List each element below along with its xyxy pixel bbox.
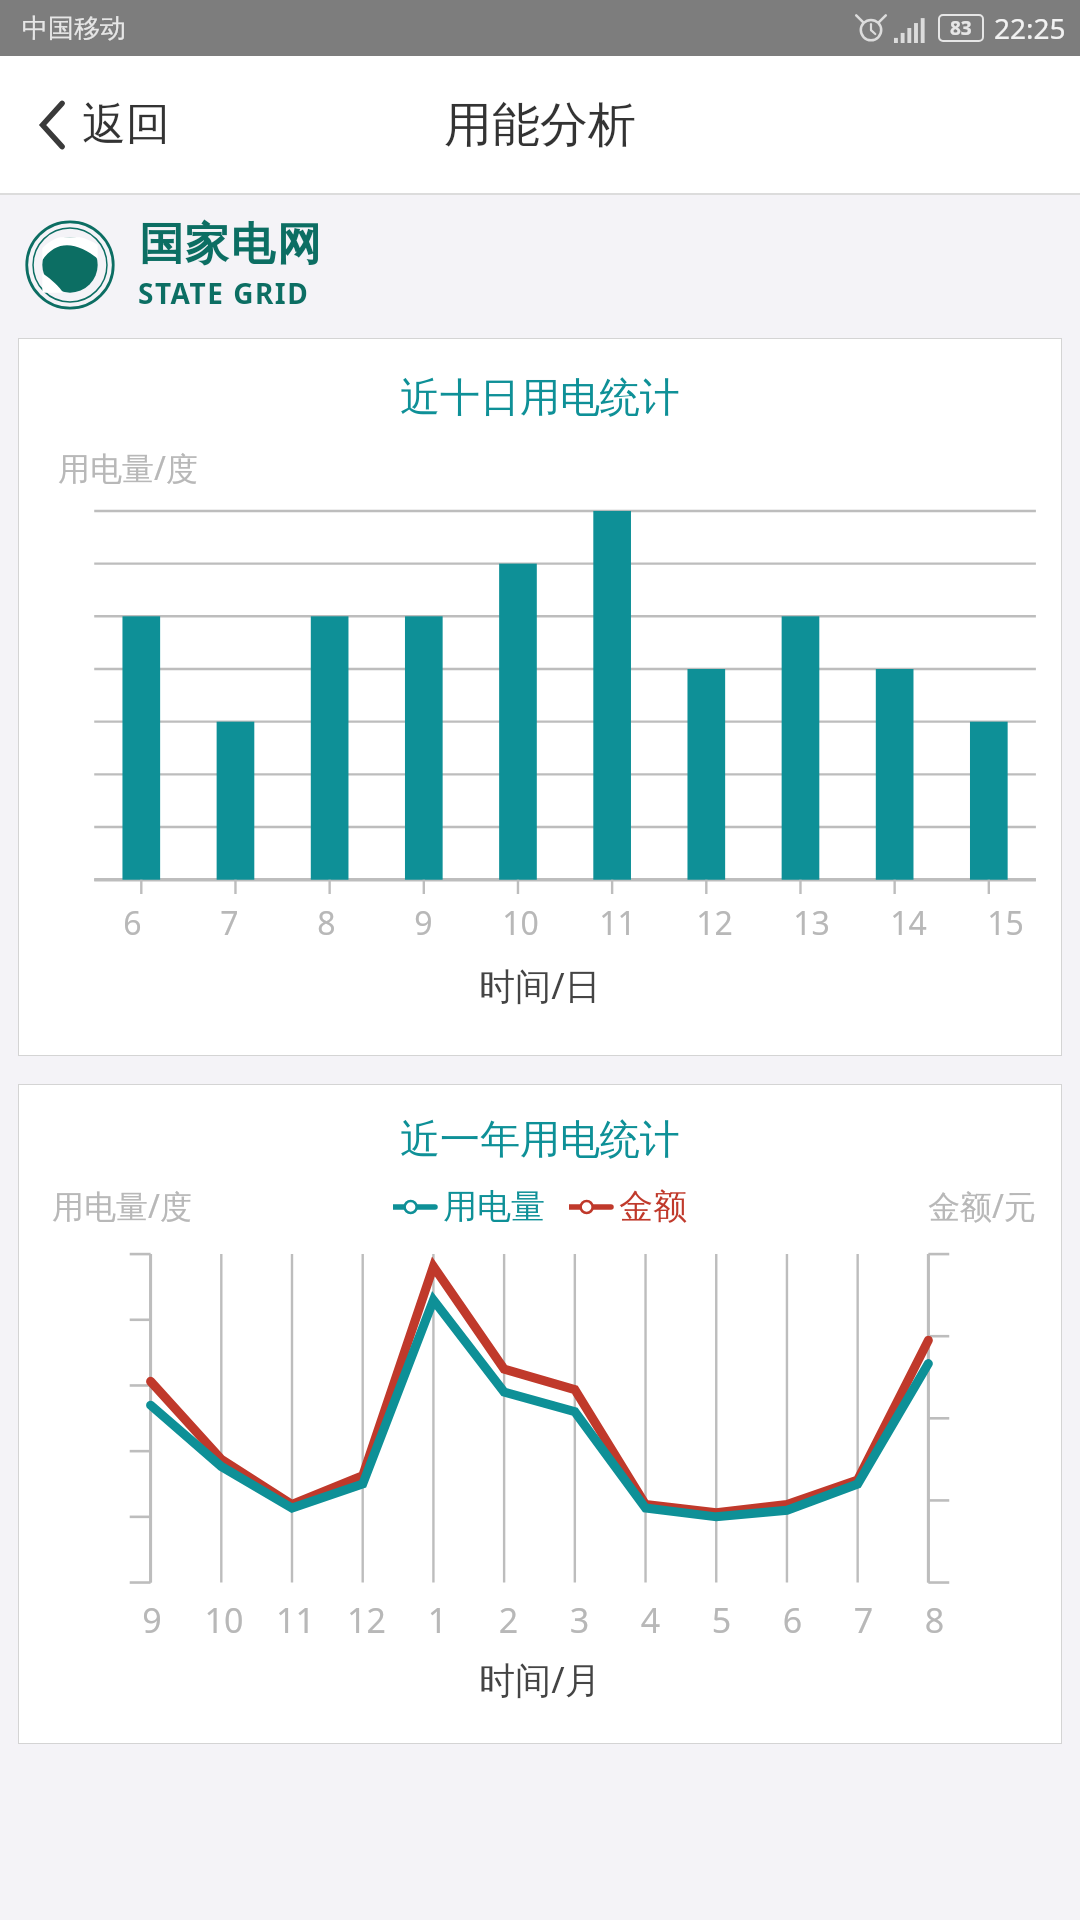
- staticText: 中国移动: [22, 12, 126, 45]
- staticText: 用能分析: [444, 95, 636, 155]
- staticText: 7: [181, 901, 278, 945]
- staticText: 近一年用电统计: [18, 1114, 1062, 1164]
- staticText: 近十日用电统计: [18, 372, 1062, 422]
- staticText: 时间/日: [18, 961, 1062, 1010]
- staticText: 3: [544, 1597, 615, 1643]
- staticText: 6: [757, 1597, 828, 1643]
- staticText: 时间/月: [18, 1655, 1062, 1704]
- staticText: 5: [686, 1597, 757, 1643]
- staticText: 83: [950, 15, 972, 41]
- button[interactable]: 金额: [569, 1185, 687, 1228]
- staticText: 9: [116, 1597, 188, 1643]
- button[interactable]: 用电量: [393, 1185, 545, 1228]
- staticText: 14: [860, 901, 957, 945]
- staticText: 用电量: [443, 1185, 545, 1228]
- staticText: 金额/元: [928, 1184, 1036, 1228]
- staticText: 11: [260, 1597, 331, 1643]
- button[interactable]: 返回: [30, 85, 180, 164]
- staticText: 用电量/度: [52, 1184, 192, 1228]
- staticText: 金额: [619, 1185, 687, 1228]
- staticText: 13: [763, 901, 860, 945]
- staticText: 22:25: [994, 9, 1066, 47]
- staticText: 15: [957, 901, 1054, 945]
- staticText: 2: [473, 1597, 544, 1643]
- staticText: 11: [569, 901, 666, 945]
- staticText: 9: [375, 901, 472, 945]
- staticText: 8: [278, 901, 375, 945]
- staticText: 12: [331, 1597, 402, 1643]
- staticText: 12: [666, 901, 763, 945]
- staticText: 用电量/度: [58, 446, 198, 490]
- staticText: 10: [188, 1597, 260, 1643]
- staticText: STATE GRID: [138, 274, 310, 312]
- staticText: 10: [472, 901, 569, 945]
- staticText: 国家电网: [138, 217, 322, 272]
- staticText: 1: [402, 1597, 473, 1643]
- staticText: 6: [84, 901, 181, 945]
- staticText: 8: [899, 1597, 970, 1643]
- staticText: 4: [615, 1597, 686, 1643]
- staticText: 返回: [82, 97, 170, 152]
- staticText: 7: [828, 1597, 899, 1643]
